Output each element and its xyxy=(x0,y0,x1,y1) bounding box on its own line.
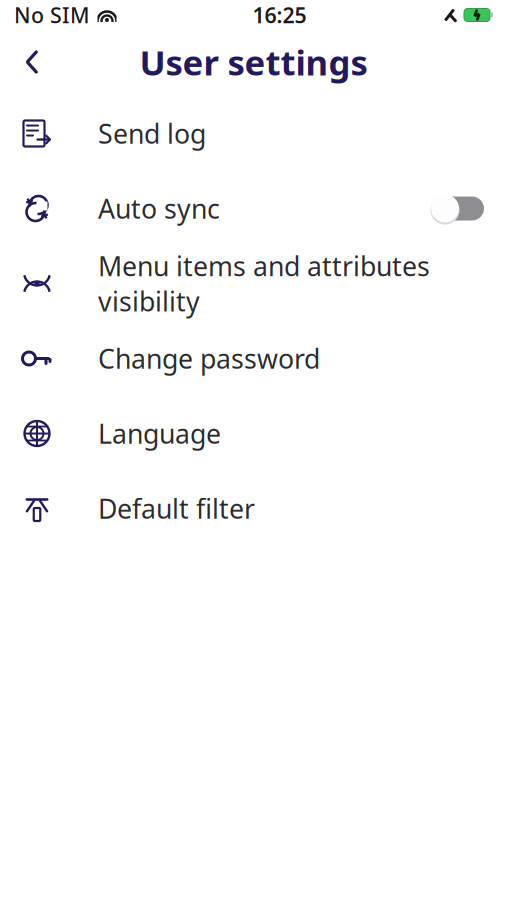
staticText: Language xyxy=(98,416,221,451)
button[interactable]: Default filter xyxy=(0,471,507,546)
button[interactable]: Language xyxy=(0,396,507,471)
button[interactable]: Menu items and attributes visibility xyxy=(0,246,507,321)
staticText: Default filter xyxy=(98,491,255,526)
staticText: 16:25 xyxy=(252,1,306,29)
button[interactable]: Back xyxy=(6,36,58,88)
staticText: Send log xyxy=(98,116,206,151)
staticText: Change password xyxy=(98,341,320,376)
staticText: User settings xyxy=(139,39,367,85)
button[interactable]: Change password xyxy=(0,321,507,396)
button[interactable]: Auto sync xyxy=(0,171,507,246)
staticText: No SIM xyxy=(14,1,90,29)
button[interactable]: Send log xyxy=(0,96,507,171)
staticText: Auto sync xyxy=(98,191,220,226)
staticText: Menu items and attributes visibility xyxy=(98,248,430,319)
